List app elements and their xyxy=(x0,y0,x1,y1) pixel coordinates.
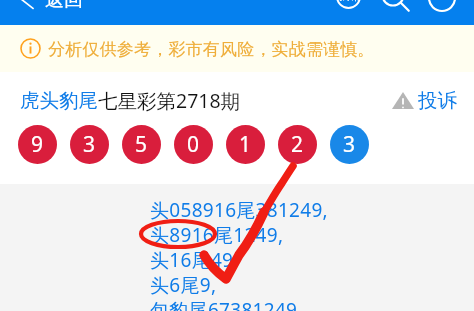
button[interactable]: 投诉 xyxy=(387,84,461,117)
button[interactable]: Search xyxy=(382,0,408,9)
staticText: 9 xyxy=(31,130,44,159)
button[interactable]: 5 xyxy=(122,125,161,164)
button[interactable]: 3 xyxy=(70,125,109,164)
button[interactable]: Channel xyxy=(334,0,363,9)
staticText: 返回 xyxy=(45,0,83,11)
staticText: 分析仅供参考，彩市有风险，实战需谨慎。 xyxy=(48,39,375,60)
staticText: 3 xyxy=(83,130,96,159)
staticText: 头16尾49 xyxy=(150,247,234,273)
staticText: 0 xyxy=(187,130,200,159)
button[interactable]: 3 xyxy=(330,125,369,164)
staticText: 头8916尾1249, xyxy=(150,222,284,248)
staticText: 头058916尾381249, xyxy=(150,197,329,223)
staticText: 3 xyxy=(343,130,356,159)
staticText: 包豹尾67381249 xyxy=(150,297,298,311)
staticText: 七星彩第2718期 xyxy=(98,87,241,114)
button[interactable]: 2 xyxy=(278,125,317,164)
button[interactable]: Account xyxy=(429,0,456,10)
button[interactable]: 1 xyxy=(226,125,265,164)
staticText: 头6尾9, xyxy=(150,272,217,298)
staticText: 虎头豹尾 xyxy=(20,88,98,113)
button[interactable]: 9 xyxy=(18,125,57,164)
staticText: 2 xyxy=(291,130,304,159)
staticText: 5 xyxy=(135,130,148,159)
staticText: 找味 xyxy=(339,0,359,3)
button[interactable]: 0 xyxy=(174,125,213,164)
staticText: 1 xyxy=(239,130,252,159)
button[interactable]: 返回 xyxy=(0,0,95,12)
staticText: 投诉 xyxy=(418,88,457,113)
